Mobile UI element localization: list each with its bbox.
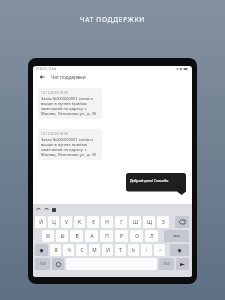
button[interactable]: SHIFT — [35, 244, 48, 256]
staticText: 12.12.2018 10:30 — [41, 90, 68, 95]
button[interactable]: А — [85, 230, 98, 242]
button[interactable]: SEND — [176, 258, 189, 270]
staticText: Р — [120, 233, 123, 240]
staticText: Заказ №XXX000001 готов и выдан в пункте … — [41, 96, 100, 116]
button[interactable]: Ц — [48, 216, 59, 228]
staticText: Заказ №XXX000001 готов и выдан в пункте … — [41, 137, 100, 157]
button[interactable]: Т — [115, 244, 126, 256]
button[interactable]: П — [100, 230, 113, 242]
button[interactable]: М — [89, 244, 100, 256]
staticText: ввод — [173, 234, 180, 238]
staticText: К — [78, 219, 81, 226]
button[interactable]: Н — [101, 216, 113, 228]
button[interactable]: Redo — [44, 207, 49, 212]
staticText: Ш — [133, 219, 138, 226]
button[interactable]: Undo — [36, 207, 41, 212]
button[interactable]: К — [74, 216, 85, 228]
staticText: П — [105, 233, 109, 240]
staticText: Л — [150, 233, 154, 240]
button[interactable]: Ь — [128, 244, 139, 256]
staticText: 10:43 Пн, 12 дек — [36, 67, 57, 71]
staticText: ? — [159, 248, 161, 253]
button[interactable]: Keyboard settings — [52, 208, 56, 212]
staticText: М — [92, 247, 97, 254]
staticText: И — [106, 247, 110, 254]
staticText: ! — [146, 248, 147, 253]
button[interactable]: Й — [35, 216, 46, 228]
staticText: Й — [39, 219, 43, 226]
staticText: 12.12.2018 10:30 — [41, 131, 68, 136]
button[interactable]: Ч — [63, 244, 74, 256]
button[interactable]: Я — [50, 244, 61, 256]
staticText: Ф — [46, 233, 50, 240]
button[interactable]: Ф — [42, 230, 54, 242]
staticText: ?123 — [39, 262, 46, 266]
staticText: ?123 — [163, 262, 170, 266]
button[interactable]: Back — [37, 72, 47, 82]
button[interactable]: В — [70, 230, 83, 242]
button[interactable]: Л — [145, 230, 158, 242]
button[interactable]: Добрый день! Спасибо — [126, 173, 186, 195]
button[interactable]: Щ — [143, 216, 155, 228]
staticText: Щ — [147, 219, 152, 226]
button[interactable]: Р — [115, 230, 128, 242]
button[interactable]: Ы — [56, 230, 68, 242]
button[interactable]: О — [130, 230, 143, 242]
button[interactable]: SHIFT — [170, 244, 189, 256]
button[interactable]: У — [61, 216, 72, 228]
staticText: Ц — [52, 219, 56, 226]
staticText: Н — [105, 219, 109, 226]
button[interactable]: ?123 — [159, 258, 174, 270]
button[interactable]: ? — [154, 244, 165, 256]
staticText: Т — [119, 247, 122, 254]
staticText: Г — [120, 219, 123, 226]
staticText: Добрый день! Спасибо — [130, 178, 169, 183]
button[interactable]: З — [157, 216, 169, 228]
button[interactable]: Е — [87, 216, 99, 228]
staticText: Чат поддержки — [51, 74, 86, 80]
button[interactable]: 12.12.2018 10:30 — [38, 129, 102, 160]
staticText: А — [90, 233, 94, 240]
button[interactable]: BACKSPACE — [175, 216, 189, 228]
button[interactable]: Ш — [129, 216, 141, 228]
button[interactable]: 12.12.2018 10:30 — [38, 88, 102, 119]
staticText: С — [80, 247, 84, 254]
staticText: ЧАТ ПОДДЕРЖКИ — [80, 15, 145, 24]
staticText: У — [65, 219, 68, 226]
staticText: В — [75, 233, 79, 240]
staticText: З — [162, 219, 165, 226]
button[interactable]: EMOJI — [52, 258, 64, 270]
button[interactable]: ! — [141, 244, 152, 256]
button[interactable]: ?123 — [35, 258, 50, 270]
button[interactable]: С — [76, 244, 87, 256]
staticText: О — [135, 233, 139, 240]
button[interactable]: И — [102, 244, 113, 256]
button[interactable]: Г — [115, 216, 127, 228]
button[interactable]: ввод — [164, 230, 189, 242]
staticText: Я — [54, 247, 58, 254]
staticText: Ч — [67, 247, 71, 254]
staticText: Ь — [132, 247, 135, 254]
staticText: Е — [92, 219, 95, 226]
staticText: Ы — [60, 233, 65, 240]
